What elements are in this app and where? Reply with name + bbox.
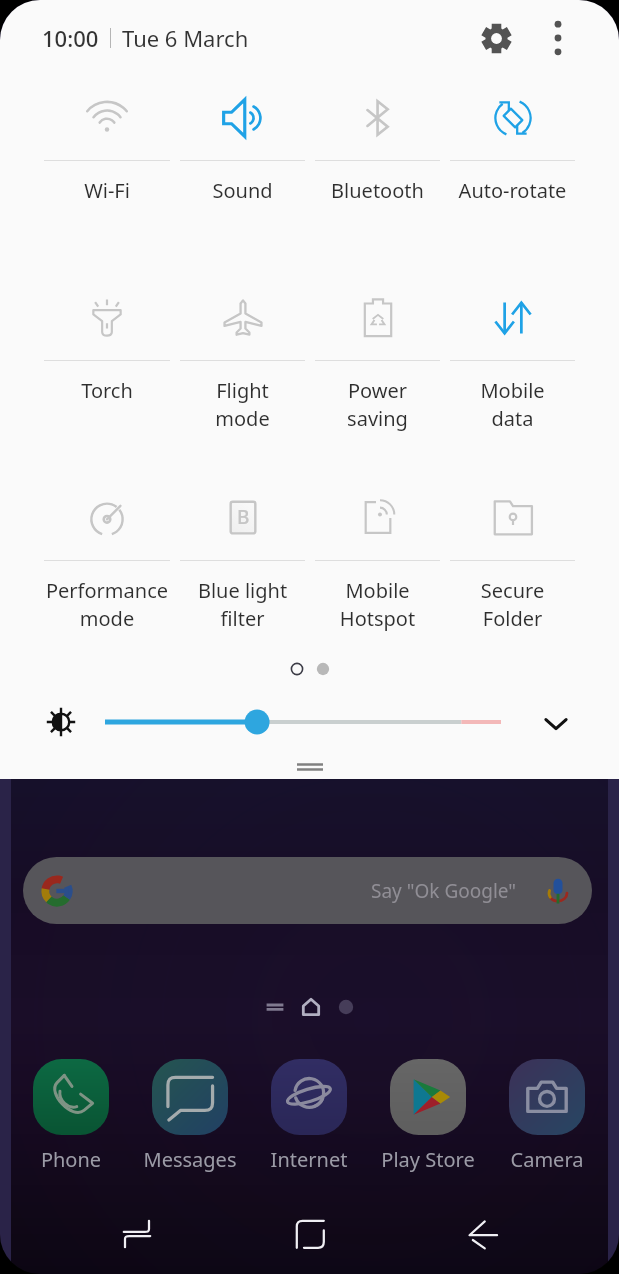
button[interactable]: Messages — [131, 1059, 249, 1173]
button[interactable]: Recents — [50, 1194, 223, 1274]
staticText: Torch — [39, 377, 175, 404]
button[interactable]: Sound — [175, 75, 310, 275]
staticText: Secure Folder — [445, 577, 580, 632]
button[interactable]: Torch — [39, 275, 175, 475]
staticText: Phone — [12, 1146, 130, 1173]
button[interactable]: Mobile Hotspot — [310, 475, 445, 675]
staticText: Power saving — [310, 377, 445, 432]
button[interactable]: Bluetooth — [310, 75, 445, 275]
button[interactable]: Play Store — [369, 1059, 487, 1173]
button[interactable]: Performance mode — [39, 475, 175, 675]
button[interactable]: More options — [538, 18, 578, 58]
staticText: Blue light filter — [175, 577, 310, 632]
staticText: B — [237, 504, 250, 530]
button[interactable]: Back — [396, 1194, 569, 1274]
button[interactable]: Settings — [472, 14, 520, 62]
staticText: Auto-rotate — [445, 177, 580, 204]
button[interactable]: Camera — [488, 1059, 606, 1173]
button[interactable]: B — [175, 475, 310, 675]
staticText: Wi-Fi — [39, 177, 175, 204]
staticText: Bluetooth — [310, 177, 445, 204]
button[interactable]: Flight mode — [175, 275, 310, 475]
staticText: 10:00 — [42, 23, 99, 53]
staticText: Internet — [250, 1146, 368, 1173]
button[interactable]: Power saving — [310, 275, 445, 475]
button[interactable]: Wi-Fi — [39, 75, 175, 275]
button[interactable]: Phone — [12, 1059, 130, 1173]
button[interactable]: Auto-rotate — [445, 75, 580, 275]
button[interactable]: Expand quick settings — [535, 702, 577, 744]
staticText: Tue 6 March — [122, 23, 249, 53]
staticText: Performance mode — [39, 577, 175, 632]
button[interactable]: Home — [223, 1194, 396, 1274]
staticText: Mobile data — [445, 377, 580, 432]
button[interactable]: Internet — [250, 1059, 368, 1173]
staticText: Camera — [488, 1146, 606, 1173]
button[interactable]: Mobile data — [445, 275, 580, 475]
button[interactable]: Secure Folder — [445, 475, 580, 675]
staticText: Flight mode — [175, 377, 310, 432]
button[interactable]: Say "Ok Google" — [23, 857, 592, 924]
staticText: Play Store — [369, 1146, 487, 1173]
staticText: Mobile Hotspot — [310, 577, 445, 632]
staticText: Sound — [175, 177, 310, 204]
staticText: Messages — [131, 1146, 249, 1173]
staticText: Say "Ok Google" — [371, 878, 517, 904]
